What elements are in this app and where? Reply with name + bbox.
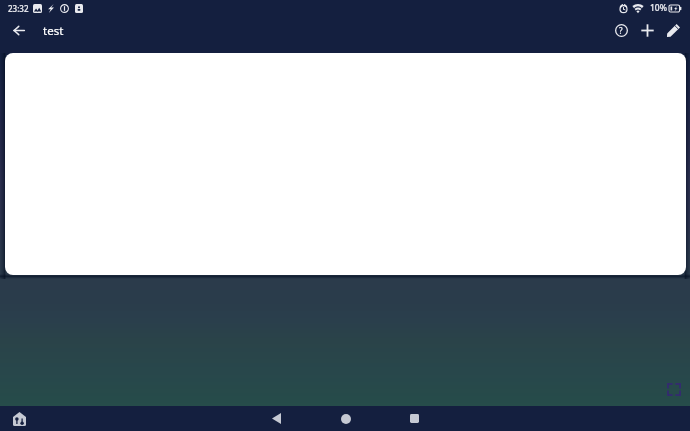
staticText: ? xyxy=(619,25,623,36)
staticText: 23:32 xyxy=(8,3,29,14)
button[interactable]: Navigate up xyxy=(0,19,38,42)
button[interactable]: Edit xyxy=(660,19,686,42)
button[interactable]: Home xyxy=(311,406,380,431)
staticText: 10% xyxy=(650,2,667,14)
button[interactable]: Recent apps xyxy=(380,406,449,431)
button[interactable]: Help xyxy=(608,19,634,42)
button[interactable]: Enter fullscreen xyxy=(667,383,681,396)
button[interactable]: Back xyxy=(242,406,311,431)
button[interactable] xyxy=(5,53,686,275)
staticText: test xyxy=(43,23,64,39)
button[interactable]: Add xyxy=(634,19,660,42)
button[interactable]: Switch input method xyxy=(13,412,26,426)
